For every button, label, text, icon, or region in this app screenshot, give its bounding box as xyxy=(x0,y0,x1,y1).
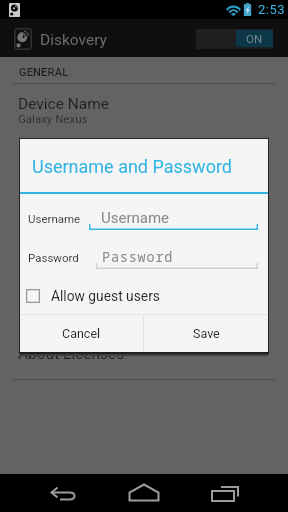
staticText: Cancel xyxy=(62,326,101,341)
staticText: GENERAL xyxy=(19,66,69,79)
staticText: Save xyxy=(193,326,220,341)
button[interactable]: Diskovery xyxy=(0,19,112,57)
staticText: Diskovery xyxy=(40,31,107,49)
button[interactable]: Recent apps xyxy=(205,474,245,512)
button[interactable]: Save xyxy=(144,315,268,352)
button[interactable]: Back xyxy=(44,474,84,512)
staticText: 2:53 xyxy=(258,2,286,17)
staticText: Password xyxy=(28,251,79,264)
staticText: Password xyxy=(102,248,174,266)
staticText: Galaxy Nexus xyxy=(18,112,88,125)
staticText: Device Name xyxy=(18,95,110,113)
staticText: Username and Password xyxy=(32,156,232,177)
staticText: Username xyxy=(28,212,81,225)
button[interactable]: Home xyxy=(122,474,166,512)
staticText: Allow guest users xyxy=(51,288,160,304)
button[interactable]: Cancel xyxy=(20,315,143,352)
staticText: About Licenses xyxy=(18,345,125,363)
button[interactable]: Toggle Diskovery service xyxy=(196,29,273,49)
staticText: ON xyxy=(246,32,263,45)
staticText: Username xyxy=(101,209,170,227)
button[interactable]: Allow guest users xyxy=(26,283,268,309)
